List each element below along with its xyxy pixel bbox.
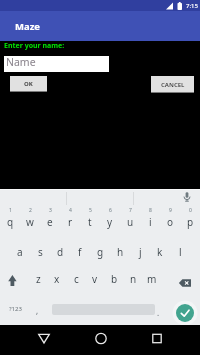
staticText: Enter your name:	[4, 41, 65, 51]
staticText: 7:15	[186, 2, 198, 10]
staticText: 4	[69, 207, 72, 214]
button[interactable]	[3, 270, 23, 290]
button[interactable]: t	[80, 214, 100, 230]
button[interactable]: x	[47, 271, 67, 286]
button[interactable]: f	[70, 244, 90, 259]
button[interactable]: a	[10, 244, 30, 259]
staticText: h	[117, 245, 124, 259]
button[interactable]: m	[142, 271, 162, 286]
staticText: r	[68, 215, 73, 229]
button[interactable]: ,	[30, 302, 45, 318]
staticText: l	[179, 245, 182, 259]
staticText: CANCEL	[161, 81, 185, 89]
button[interactable]: b	[104, 271, 124, 286]
button[interactable]: g	[90, 244, 110, 259]
staticText: c	[74, 272, 79, 286]
staticText: j	[139, 245, 142, 259]
staticText: q	[7, 215, 14, 229]
staticText: u	[127, 215, 134, 229]
staticText: o	[167, 215, 174, 229]
staticText: 6	[109, 207, 112, 214]
staticText: w	[26, 215, 34, 229]
staticText: 8	[149, 207, 152, 214]
staticText: Name	[6, 55, 36, 69]
button[interactable]	[177, 187, 197, 207]
button[interactable]	[88, 326, 114, 352]
button[interactable]: n	[123, 271, 143, 286]
staticText: Maze	[15, 20, 41, 33]
staticText: 2	[29, 207, 32, 214]
staticText: ?123	[9, 305, 22, 313]
staticText: ,	[36, 305, 39, 316]
staticText: f	[78, 245, 82, 259]
button[interactable]: Name	[4, 56, 109, 72]
staticText: b	[111, 272, 118, 286]
staticText: x	[54, 272, 60, 286]
button[interactable]: j	[130, 244, 150, 259]
staticText: y	[107, 215, 113, 229]
button[interactable]: .	[150, 304, 166, 320]
button[interactable]: s	[30, 244, 50, 259]
button[interactable]: h	[110, 244, 130, 259]
staticText: z	[36, 272, 41, 286]
staticText: 0	[189, 207, 192, 214]
staticText: d	[57, 245, 64, 259]
button[interactable]: i	[140, 214, 160, 230]
button[interactable]: OK	[10, 76, 47, 92]
button[interactable]: ?123	[0, 302, 30, 316]
staticText: 9	[169, 207, 172, 214]
button[interactable]: o	[160, 214, 180, 230]
staticText: OK	[24, 80, 33, 88]
button[interactable]: e	[40, 214, 60, 230]
button[interactable]: p	[180, 214, 200, 230]
button[interactable]: y	[100, 214, 120, 230]
staticText: p	[187, 215, 194, 229]
staticText: a	[17, 245, 23, 259]
button[interactable]	[176, 304, 194, 322]
staticText: 1	[9, 207, 12, 214]
button[interactable]: CANCEL	[151, 76, 194, 93]
button[interactable]: q	[0, 214, 20, 230]
staticText: 3	[49, 207, 52, 214]
button[interactable]	[175, 273, 195, 293]
staticText: .	[157, 307, 160, 318]
button[interactable]	[31, 326, 57, 352]
button[interactable]: d	[50, 244, 70, 259]
button[interactable]: z	[28, 271, 48, 286]
staticText: e	[47, 215, 53, 229]
staticText: v	[92, 272, 98, 286]
button[interactable]: w	[20, 214, 40, 230]
button[interactable]: v	[85, 271, 105, 286]
button[interactable]	[144, 326, 170, 352]
staticText: t	[88, 215, 92, 229]
button[interactable]: u	[120, 214, 140, 230]
staticText: g	[97, 245, 104, 259]
staticText: k	[157, 245, 163, 259]
staticText: n	[130, 272, 137, 286]
staticText: i	[149, 215, 152, 229]
button[interactable]: l	[170, 244, 190, 259]
staticText: m	[147, 272, 157, 286]
staticText: s	[38, 245, 43, 259]
staticText: 5	[89, 207, 92, 214]
button[interactable]: c	[66, 271, 86, 286]
button[interactable]: r	[60, 214, 80, 230]
staticText: 7	[129, 207, 132, 214]
button[interactable]: k	[150, 244, 170, 259]
